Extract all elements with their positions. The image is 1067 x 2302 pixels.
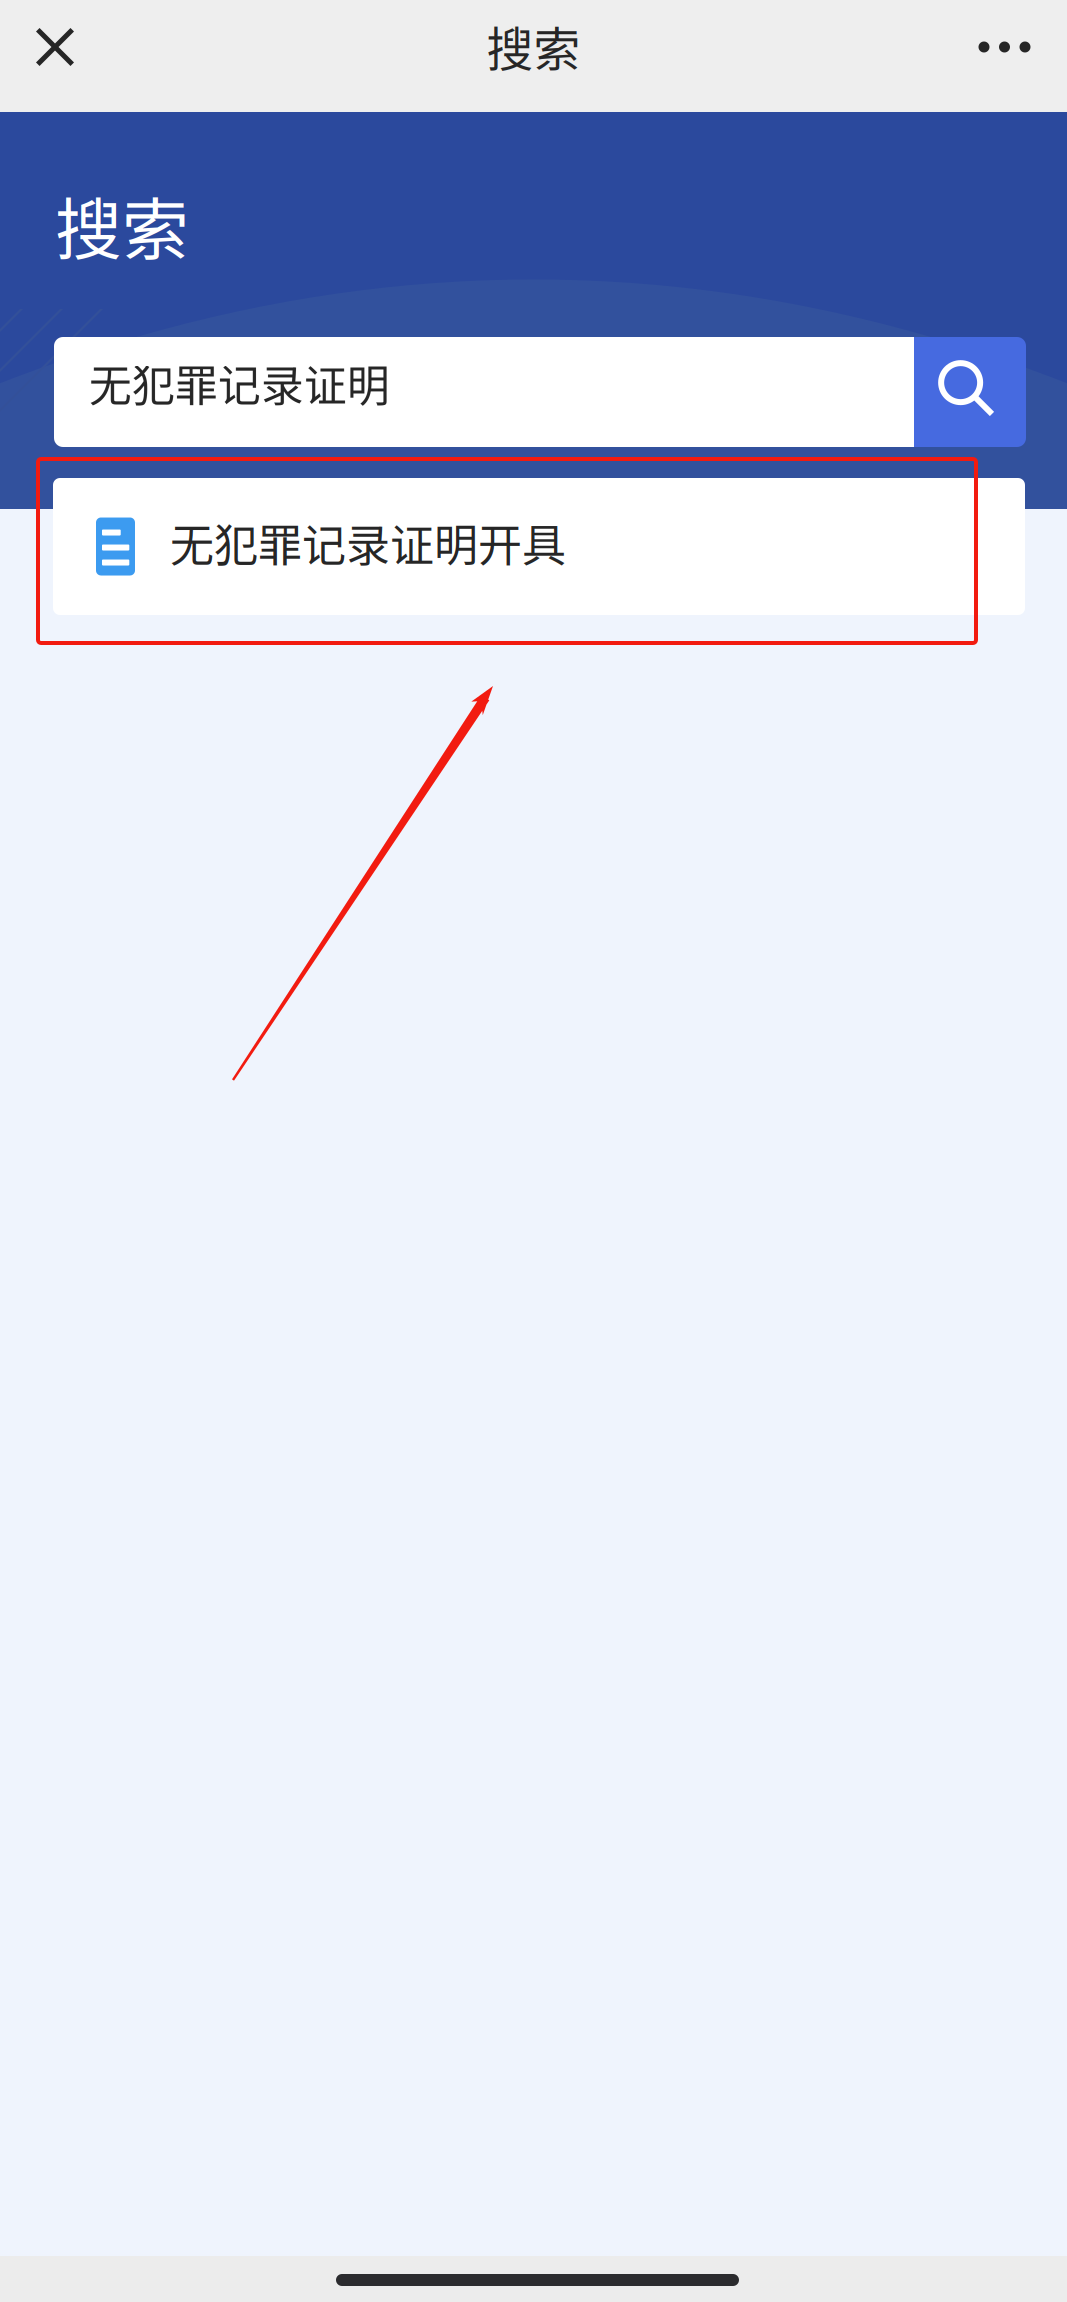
staticText: 无犯罪记录证明: [89, 352, 390, 414]
button[interactable]: 无犯罪记录证明: [54, 337, 914, 447]
staticText: 搜索: [486, 12, 580, 80]
staticText: 无犯罪记录证明开具: [170, 511, 566, 574]
button[interactable]: More: [942, 0, 1067, 94]
button[interactable]: 无犯罪记录证明开具: [53, 478, 1025, 615]
button[interactable]: Search: [914, 337, 1026, 447]
staticText: 搜索: [55, 177, 189, 273]
button[interactable]: Close: [0, 0, 110, 94]
